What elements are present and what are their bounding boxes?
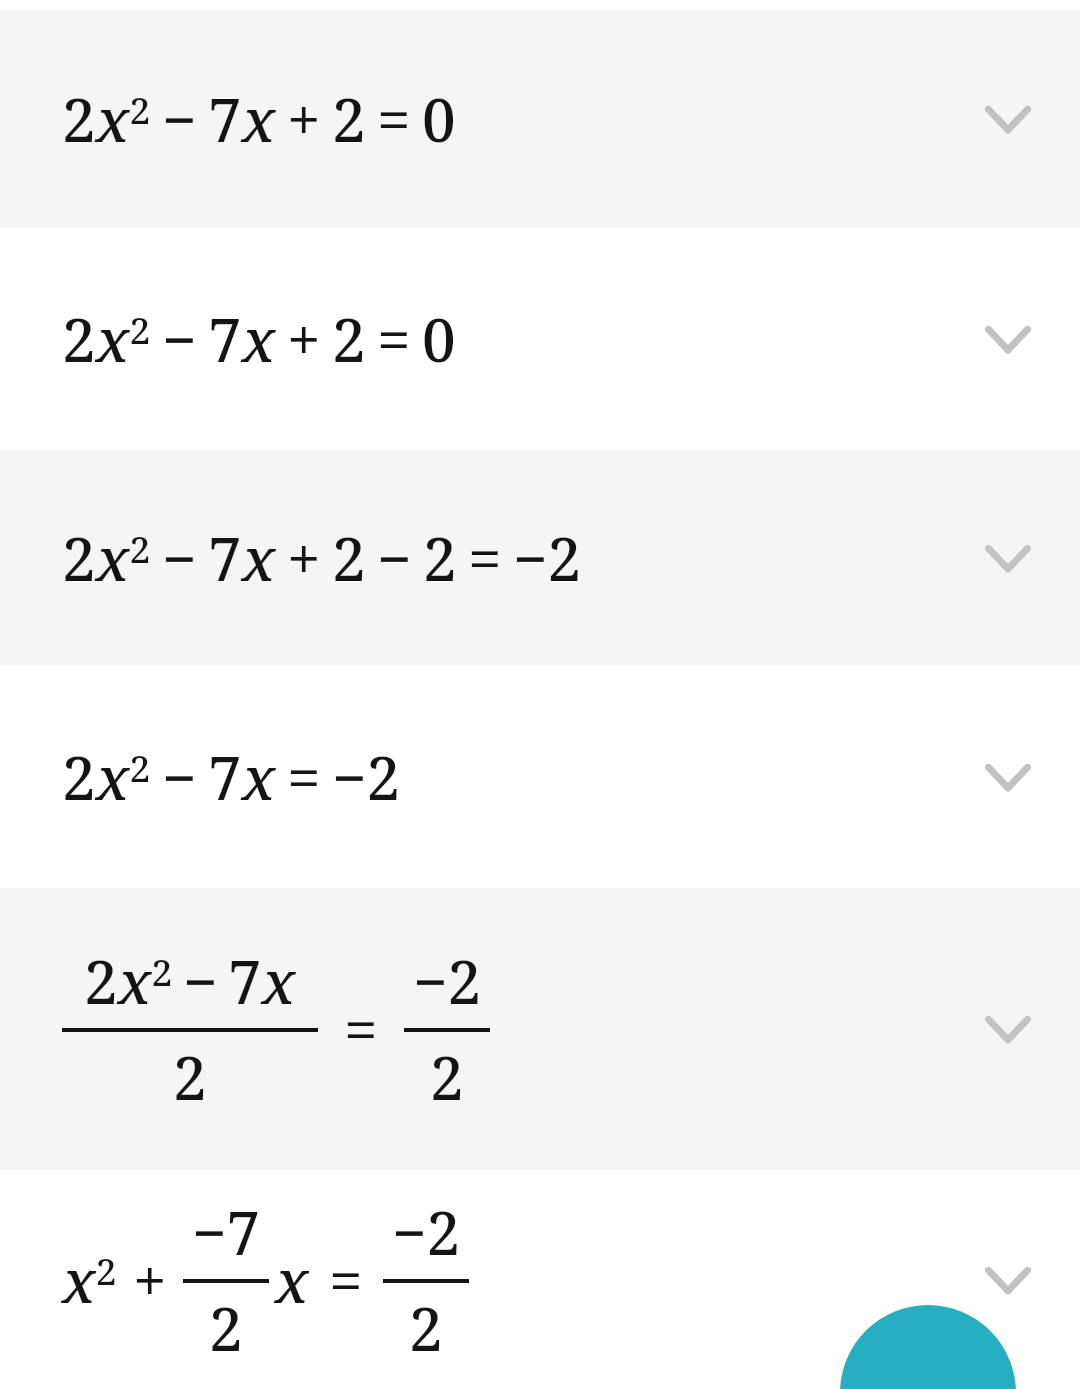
staticText: −2 [392,1191,461,1273]
button[interactable]: Expand step [976,1248,1040,1312]
staticText: 2x2 [62,78,151,160]
button[interactable]: x2 [0,1170,1080,1389]
staticText: 2 [332,78,366,160]
staticText: 2 [409,1287,443,1369]
staticText: = [287,736,321,818]
staticText: −2 [332,736,401,818]
staticText: + [287,298,321,380]
staticText: 2 [430,1036,464,1118]
staticText: − [377,517,412,599]
staticText: 2 [332,517,366,599]
staticText: x [275,1239,309,1321]
staticText: − [162,298,197,380]
staticText: + [133,1239,167,1321]
staticText: 7x [208,517,276,599]
staticText: = [344,988,378,1070]
staticText: = [468,517,502,599]
staticText: + [287,517,321,599]
staticText: 0 [422,78,456,160]
staticText: = [329,1239,363,1321]
staticText: 7x [208,78,276,160]
staticText: + [287,78,321,160]
button[interactable]: 2x2 [0,228,1080,450]
staticText: 2x2 [62,736,151,818]
button[interactable]: Expand step [976,526,1040,590]
button[interactable]: 2x2 [0,10,1080,228]
staticText: 7x [208,298,276,380]
button[interactable]: Expand step [976,87,1040,151]
staticText: 0 [422,298,456,380]
staticText: − [183,940,218,1022]
staticText: 7x [208,736,276,818]
button[interactable]: 2x2 [0,665,1080,888]
staticText: − [162,736,197,818]
staticText: −2 [513,517,582,599]
staticText: 2 [209,1287,243,1369]
staticText: 2 [173,1036,207,1118]
button[interactable]: Expand step [976,745,1040,809]
staticText: 7x [228,940,296,1022]
button[interactable]: Scroll to bottom [840,1305,1016,1389]
button[interactable]: Expand step [976,997,1040,1061]
button[interactable]: 2x2 [0,450,1080,665]
staticText: − [162,517,197,599]
button[interactable]: Expand step [976,307,1040,371]
staticText: 2x2 [62,298,151,380]
staticText: 2x2 [84,940,173,1022]
staticText: x2 [62,1239,117,1321]
staticText: −2 [413,940,482,1022]
staticText: 2 [332,298,366,380]
staticText: −7 [192,1191,261,1273]
staticText: − [162,78,197,160]
staticText: 2 [423,517,457,599]
staticText: = [377,298,411,380]
staticText: = [377,78,411,160]
button[interactable]: 2x2 [0,888,1080,1170]
staticText: 2x2 [62,517,151,599]
